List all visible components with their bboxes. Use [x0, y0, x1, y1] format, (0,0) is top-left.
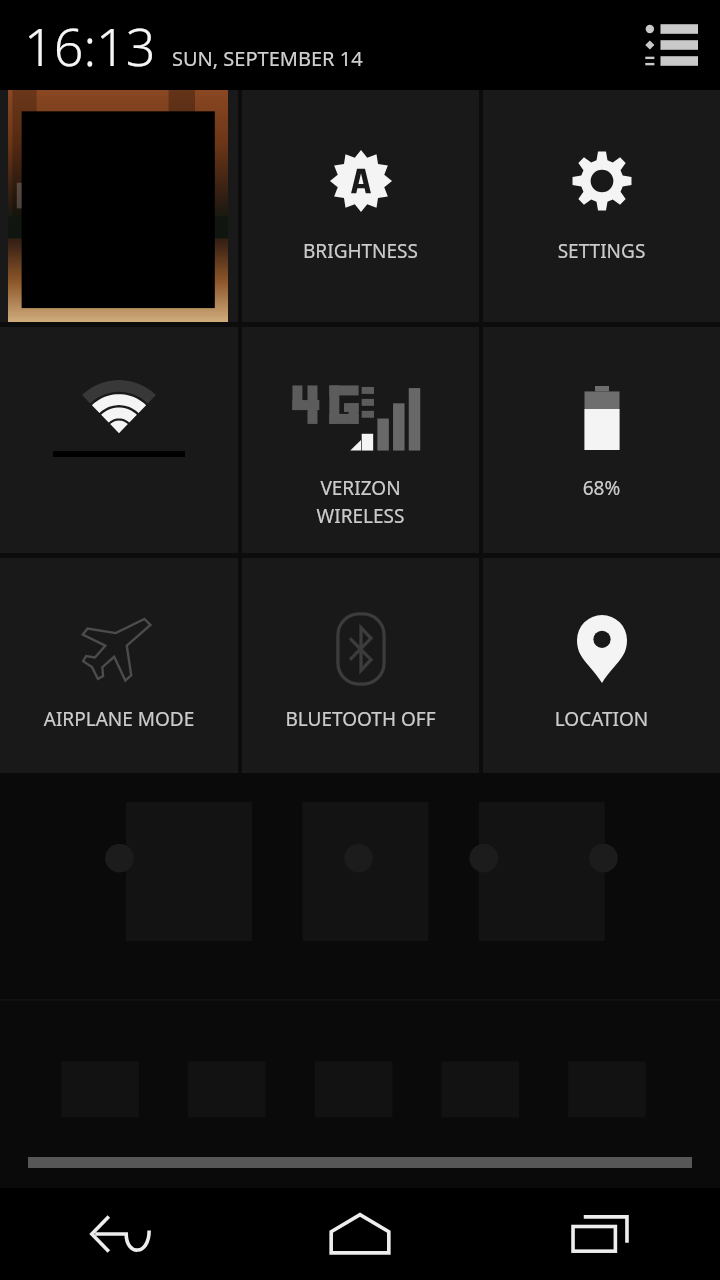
staticText: SETTINGS — [483, 238, 720, 264]
button[interactable]: BLUETOOTH OFF — [242, 558, 479, 773]
button[interactable]: 68% — [483, 327, 720, 553]
staticText: BRIGHTNESS — [242, 238, 479, 264]
staticText: AIRPLANE MODE — [0, 706, 238, 732]
button[interactable]: User profile — [0, 90, 238, 322]
button[interactable]: Notification settings — [638, 13, 702, 77]
button[interactable]: Wi-Fi network — [0, 327, 238, 553]
button[interactable]: Back — [0, 1188, 240, 1280]
button[interactable]: VERIZON WIRELESS — [242, 327, 479, 553]
button[interactable]: LOCATION — [483, 558, 720, 773]
button[interactable]: BRIGHTNESS — [242, 90, 479, 322]
staticText: 68% — [483, 475, 720, 501]
staticText: LOCATION — [483, 706, 720, 732]
button[interactable]: Home — [240, 1188, 480, 1280]
button[interactable]: AIRPLANE MODE — [0, 558, 238, 773]
staticText: BLUETOOTH OFF — [242, 706, 479, 732]
staticText: 16:13 — [24, 10, 156, 81]
button[interactable]: Recent apps — [480, 1188, 720, 1280]
staticText: VERIZON WIRELESS — [242, 475, 479, 529]
button[interactable]: SETTINGS — [483, 90, 720, 322]
staticText: SUN, SEPTEMBER 14 — [172, 45, 363, 72]
